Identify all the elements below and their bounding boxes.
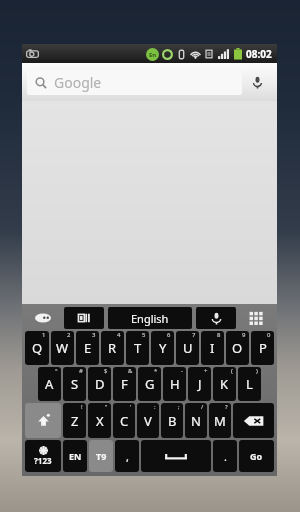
button[interactable]: Symbols: [25, 440, 61, 472]
staticText: X: [96, 412, 104, 430]
staticText: 0: [267, 331, 271, 339]
button[interactable]: D: [88, 367, 111, 401]
button[interactable]: .: [213, 440, 237, 472]
staticText: 2: [67, 331, 71, 339]
staticText: D: [95, 375, 105, 393]
staticText: Q: [32, 339, 43, 357]
staticText: /: [201, 403, 204, 411]
button[interactable]: Google: [27, 70, 242, 95]
staticText: ,: [126, 449, 129, 464]
staticText: ): [256, 367, 258, 375]
staticText: N: [191, 412, 201, 430]
staticText: A: [45, 375, 54, 393]
staticText: 5: [142, 331, 146, 339]
staticText: E: [84, 339, 92, 357]
staticText: Y: [159, 339, 167, 357]
staticText: L: [246, 375, 253, 393]
staticText: ": [105, 403, 108, 411]
staticText: ': [130, 403, 132, 411]
staticText: R: [108, 339, 117, 357]
staticText: V: [144, 412, 152, 430]
staticText: +: [204, 367, 208, 375]
staticText: J: [198, 375, 202, 393]
staticText: Z: [71, 412, 79, 430]
button[interactable]: Z: [63, 403, 86, 438]
button[interactable]: Emoji: [24, 307, 62, 329]
staticText: C: [120, 412, 129, 430]
staticText: .: [224, 449, 227, 464]
button[interactable]: English: [108, 307, 192, 329]
staticText: H: [170, 375, 180, 393]
button[interactable]: R: [101, 331, 124, 365]
staticText: &: [128, 367, 133, 375]
button[interactable]: L: [238, 367, 261, 401]
staticText: *: [154, 367, 158, 375]
staticText: ?: [225, 403, 228, 411]
staticText: 7: [192, 331, 196, 339]
button[interactable]: F: [113, 367, 136, 401]
button[interactable]: Voice input: [196, 307, 236, 329]
staticText: ;: [178, 403, 180, 411]
staticText: T9: [96, 450, 107, 462]
button[interactable]: W: [51, 331, 74, 365]
button[interactable]: Space: [141, 440, 211, 472]
button[interactable]: N: [185, 403, 207, 438]
staticText: 8: [217, 331, 221, 339]
staticText: W: [56, 339, 69, 357]
staticText: :: [154, 403, 156, 411]
button[interactable]: Backspace: [233, 403, 274, 438]
staticText: !: [81, 403, 83, 411]
staticText: #: [79, 367, 83, 375]
staticText: 08:02: [246, 47, 272, 61]
staticText: EN: [69, 450, 82, 462]
button[interactable]: K: [213, 367, 236, 401]
button[interactable]: E: [76, 331, 99, 365]
staticText: O: [232, 339, 243, 357]
button[interactable]: S: [63, 367, 86, 401]
staticText: B: [168, 412, 177, 430]
staticText: $: [104, 367, 108, 375]
staticText: °: [55, 367, 58, 375]
staticText: K: [220, 375, 229, 393]
button[interactable]: J: [188, 367, 211, 401]
staticText: -: [181, 367, 183, 375]
staticText: Google: [54, 73, 102, 92]
button[interactable]: Input method: [64, 307, 104, 329]
staticText: M: [214, 412, 226, 430]
button[interactable]: H: [163, 367, 186, 401]
button[interactable]: P: [251, 331, 274, 365]
staticText: G: [145, 375, 155, 393]
staticText: ?123: [34, 455, 52, 466]
button[interactable]: Shift: [25, 403, 61, 438]
staticText: Go: [250, 450, 263, 462]
staticText: U: [183, 339, 193, 357]
button[interactable]: U: [176, 331, 199, 365]
staticText: S: [71, 375, 79, 393]
button[interactable]: A: [38, 367, 61, 401]
button[interactable]: Keyboard layouts: [238, 307, 275, 329]
button[interactable]: Q: [25, 331, 49, 365]
button[interactable]: G: [138, 367, 161, 401]
staticText: English: [131, 311, 169, 326]
button[interactable]: X: [88, 403, 111, 438]
button[interactable]: Y: [151, 331, 174, 365]
button[interactable]: M: [209, 403, 231, 438]
button[interactable]: O: [226, 331, 249, 365]
button[interactable]: C: [113, 403, 135, 438]
button[interactable]: T: [126, 331, 149, 365]
staticText: I: [210, 339, 215, 357]
button[interactable]: EN: [63, 440, 87, 472]
staticText: F: [121, 375, 128, 393]
staticText: 6: [167, 331, 171, 339]
staticText: 3: [92, 331, 96, 339]
button[interactable]: I: [201, 331, 224, 365]
button[interactable]: T9: [89, 440, 113, 472]
staticText: 4: [117, 331, 121, 339]
button[interactable]: B: [161, 403, 183, 438]
button[interactable]: Go: [239, 440, 274, 472]
button[interactable]: V: [137, 403, 159, 438]
button[interactable]: Voice search: [242, 70, 272, 95]
staticText: En: [149, 51, 157, 59]
staticText: P: [259, 339, 267, 357]
button[interactable]: ,: [115, 440, 139, 472]
